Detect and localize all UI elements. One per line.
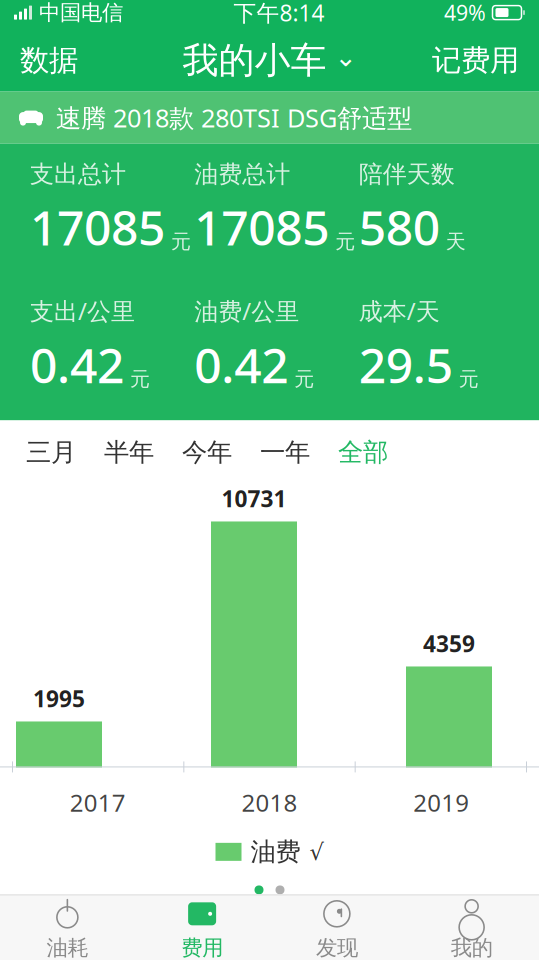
button[interactable]: 速腾 2018款 280TSI DSG舒适型 — [0, 92, 539, 144]
staticText: ⌄ — [334, 42, 356, 72]
button[interactable]: 一年 — [246, 425, 324, 480]
staticText: 中国电信 — [39, 0, 123, 26]
staticText: 4359 — [423, 628, 475, 658]
staticText: 陪伴天数 — [359, 160, 455, 189]
staticText: 三月 — [26, 437, 76, 468]
button[interactable]: 油费 — [207, 832, 331, 871]
staticText: 元 — [171, 229, 191, 254]
staticText: 油费 — [250, 836, 300, 867]
staticText: √ — [309, 839, 323, 865]
staticText: 元 — [335, 229, 355, 254]
staticText: 580 — [359, 195, 440, 259]
staticText: 我的小车 — [182, 38, 326, 83]
staticText: 17085 — [194, 195, 329, 259]
staticText: 元 — [130, 367, 150, 391]
staticText: 下午8:14 — [233, 0, 324, 28]
staticText: 49% — [444, 0, 486, 27]
staticText: 一年 — [260, 437, 310, 468]
staticText: 10731 — [221, 483, 286, 513]
button[interactable]: 油耗 — [0, 895, 135, 960]
staticText: 29.5 — [359, 333, 453, 396]
staticText: 记费用 — [432, 43, 519, 79]
staticText: 费用 — [181, 935, 223, 960]
button[interactable]: 今年 — [168, 425, 246, 480]
staticText: 2019 — [413, 786, 469, 818]
staticText: 1995 — [33, 683, 85, 713]
staticText: 元 — [459, 367, 479, 391]
staticText: 支出/公里 — [30, 295, 135, 327]
staticText: 0.42 — [30, 333, 124, 396]
button[interactable]: 发现 — [269, 895, 404, 960]
staticText: 我的 — [451, 935, 493, 960]
staticText: 半年 — [104, 437, 154, 468]
button[interactable]: 全部 — [324, 425, 402, 480]
button[interactable]: 费用 — [135, 895, 270, 960]
staticText: 0.42 — [194, 333, 288, 396]
button[interactable]: 数据 — [0, 33, 98, 89]
button[interactable]: 三月 — [12, 425, 90, 480]
staticText: 2017 — [70, 786, 126, 818]
staticText: 支出总计 — [30, 160, 126, 189]
staticText: 速腾 2018款 280TSI DSG舒适型 — [56, 101, 412, 134]
staticText: 天 — [446, 229, 466, 254]
button[interactable]: 我的 — [404, 895, 539, 960]
staticText: 17085 — [30, 195, 165, 259]
staticText: 元 — [294, 367, 314, 391]
staticText: 全部 — [338, 437, 388, 468]
button[interactable]: 半年 — [90, 425, 168, 480]
staticText: 油耗 — [46, 935, 88, 960]
staticText: 油费总计 — [194, 160, 290, 189]
staticText: 发现 — [316, 935, 358, 960]
staticText: 成本/天 — [359, 295, 440, 327]
staticText: 今年 — [182, 437, 232, 468]
staticText: 数据 — [20, 43, 78, 79]
button[interactable]: 记费用 — [412, 33, 539, 89]
button[interactable]: 我的小车 — [172, 32, 366, 89]
staticText: 油费/公里 — [194, 295, 299, 327]
staticText: 2018 — [241, 786, 297, 818]
